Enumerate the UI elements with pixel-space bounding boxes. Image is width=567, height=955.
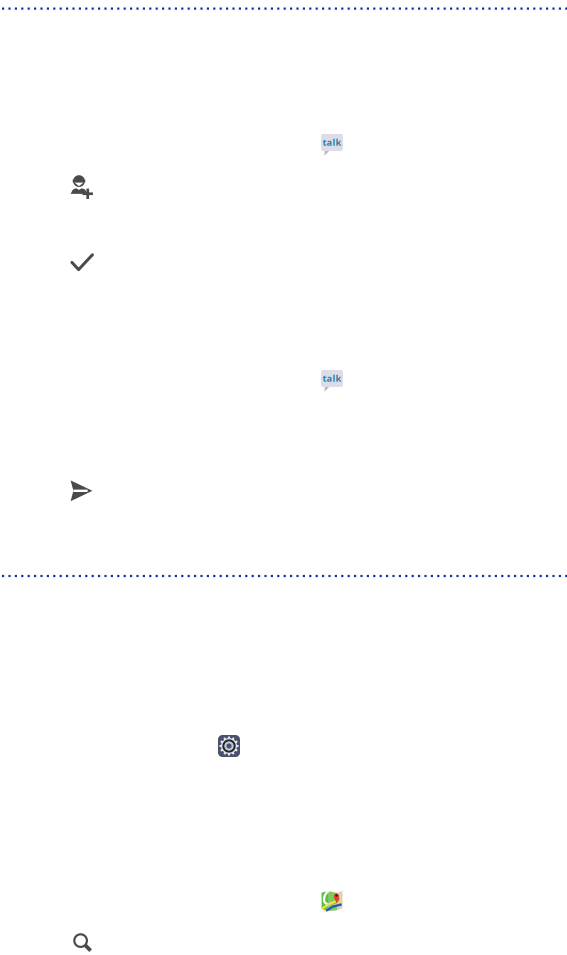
button[interactable]: Search [73,933,92,952]
button[interactable]: Google Maps [321,890,343,913]
button[interactable]: Send [70,480,93,502]
button[interactable]: Settings [218,735,240,757]
staticText: talk [322,372,341,384]
button[interactable]: Google Talk [321,134,343,156]
button[interactable]: Google Talk [321,370,343,392]
button[interactable]: Add person [70,174,93,199]
button[interactable]: Done [71,253,94,272]
staticText: talk [322,136,341,148]
